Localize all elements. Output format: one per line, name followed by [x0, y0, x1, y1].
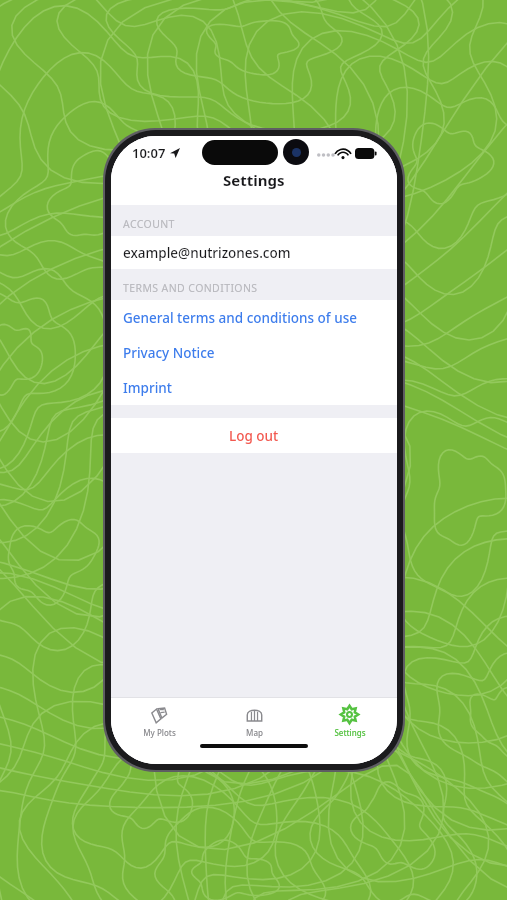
staticText: Log out [229, 427, 279, 445]
staticText: ACCOUNT [123, 217, 175, 231]
button[interactable]: My Plots [111, 698, 207, 744]
button[interactable]: Map [207, 698, 302, 744]
staticText: Map [246, 727, 263, 738]
staticText: example@nutrizones.com [123, 244, 291, 262]
staticText: My Plots [143, 727, 176, 738]
staticText: 10:07 [132, 144, 166, 162]
staticText: Settings [223, 170, 285, 190]
button[interactable]: Imprint [111, 370, 397, 405]
button[interactable]: General terms and conditions of use [111, 300, 397, 335]
button[interactable]: Settings [302, 698, 397, 744]
button[interactable]: Privacy Notice [111, 335, 397, 370]
staticText: Settings [334, 727, 366, 738]
button[interactable]: example@nutrizones.com [111, 236, 397, 269]
staticText: General terms and conditions of use [123, 309, 357, 327]
button[interactable]: Log out [111, 418, 397, 453]
staticText: Privacy Notice [123, 344, 215, 362]
staticText: TERMS AND CONDITIONS [123, 281, 258, 295]
staticText: Imprint [123, 379, 172, 397]
